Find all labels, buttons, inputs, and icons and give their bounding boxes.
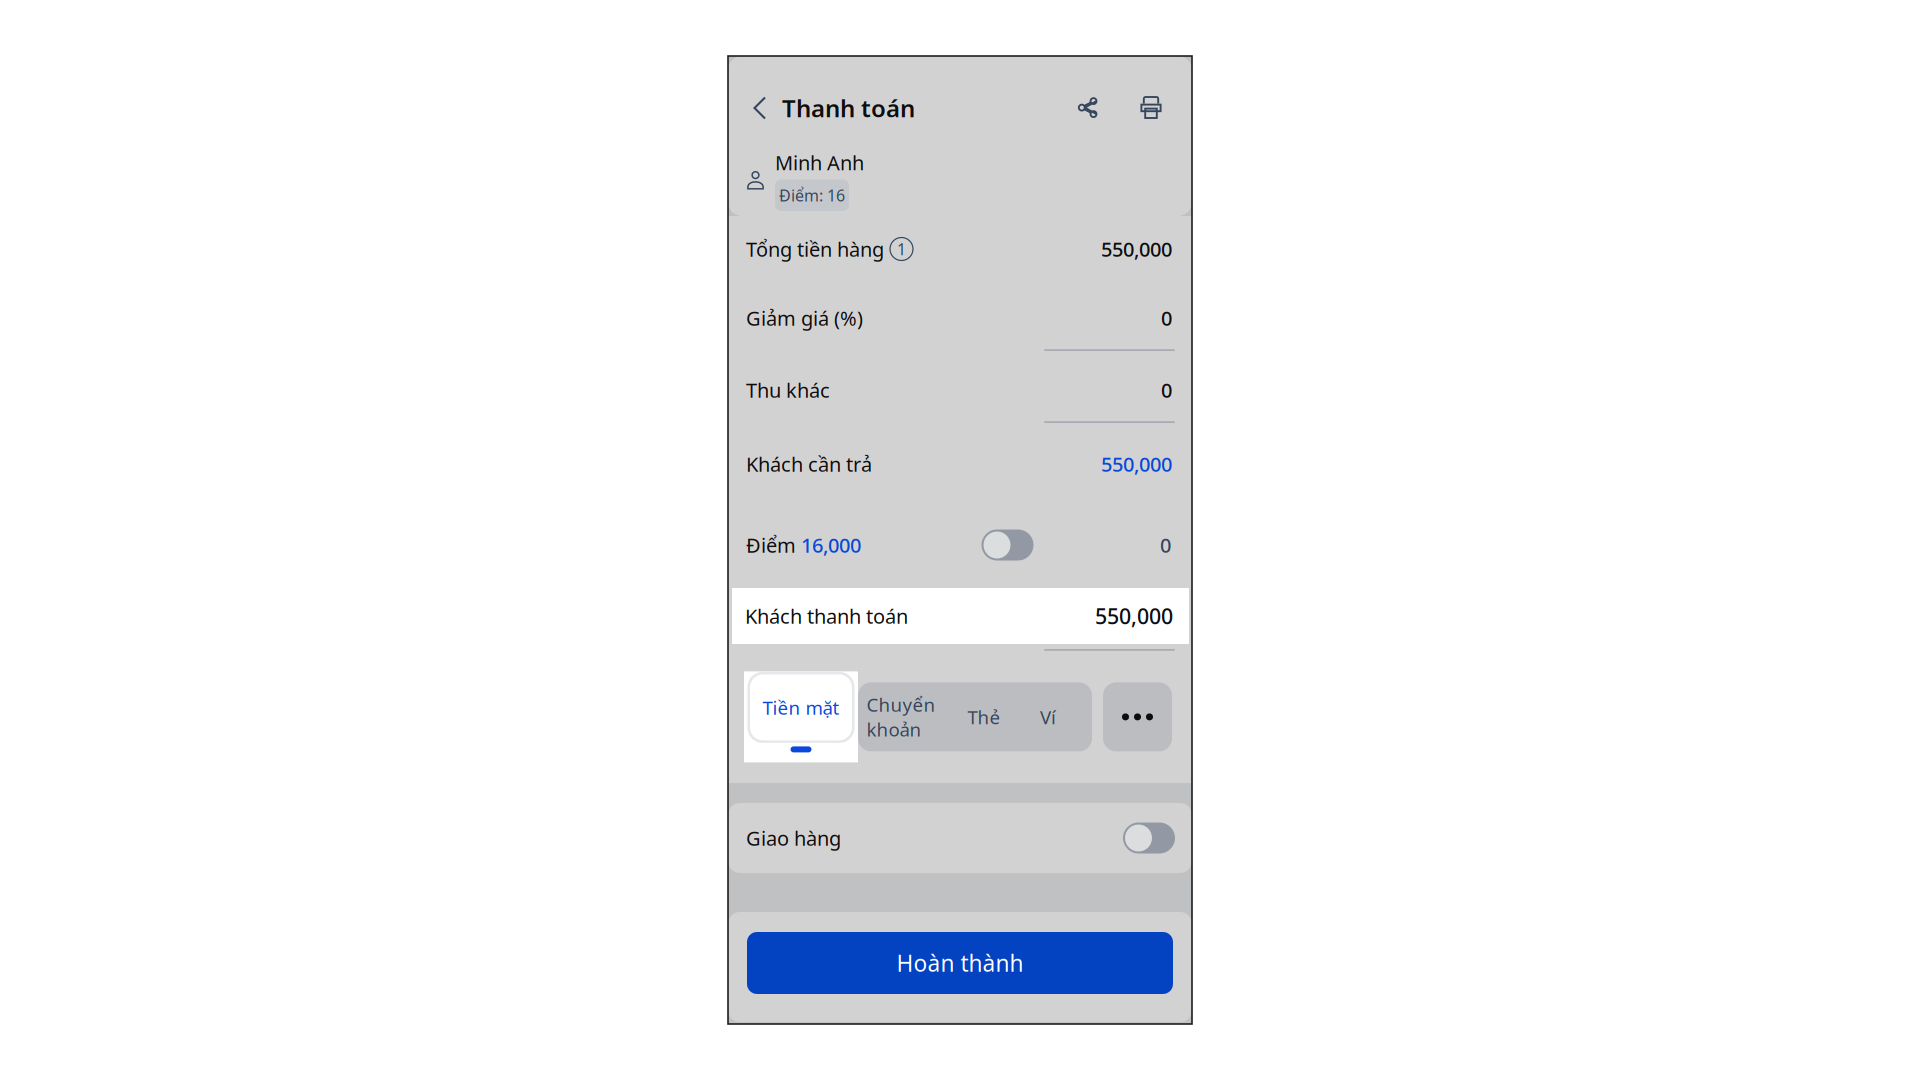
staticText: Giao hàng — [746, 825, 841, 851]
button[interactable]: Delivery — [1123, 822, 1175, 853]
button[interactable]: More payment methods — [1103, 682, 1172, 751]
staticText: 550,000 — [1095, 602, 1173, 630]
staticText: Ví — [1040, 704, 1056, 729]
staticText: Tiền mặt — [762, 695, 839, 720]
staticText: Thẻ — [967, 704, 1000, 729]
staticText: 1 — [897, 238, 906, 260]
button[interactable]: Share — [1065, 85, 1111, 131]
button[interactable]: Redeem points — [981, 529, 1033, 560]
staticText: Khách cần trả — [746, 451, 872, 477]
button[interactable]: Ví — [1024, 682, 1092, 751]
staticText: Hoàn thành — [896, 948, 1023, 978]
staticText: Điểm: 16 — [779, 185, 845, 206]
button[interactable]: Minh Anh — [728, 144, 1192, 216]
button[interactable]: Back — [744, 83, 776, 133]
staticText: Khách thanh toán — [745, 603, 908, 629]
staticText: Điểm — [746, 532, 801, 558]
button[interactable]: Hoàn thành — [747, 932, 1173, 994]
staticText: 0 — [1160, 532, 1171, 558]
staticText: Chuyển khoản — [866, 692, 935, 742]
staticText: 550,000 — [1101, 236, 1172, 262]
button[interactable]: Chuyển khoản — [858, 682, 944, 751]
staticText: 0 — [1161, 377, 1172, 403]
button[interactable]: Tiền mặt — [750, 674, 852, 740]
staticText: Thu khác — [746, 377, 830, 403]
staticText: Minh Anh — [775, 149, 864, 176]
staticText: 0 — [1161, 305, 1172, 331]
staticText: Giảm giá (%) — [746, 305, 863, 331]
staticText: Tổng tiền hàng — [746, 236, 884, 262]
button[interactable]: Thẻ — [944, 682, 1024, 751]
staticText: Thanh toán — [782, 92, 915, 124]
button[interactable]: Print — [1132, 85, 1171, 131]
staticText: 550,000 — [1101, 451, 1172, 477]
staticText: 16,000 — [801, 532, 861, 558]
